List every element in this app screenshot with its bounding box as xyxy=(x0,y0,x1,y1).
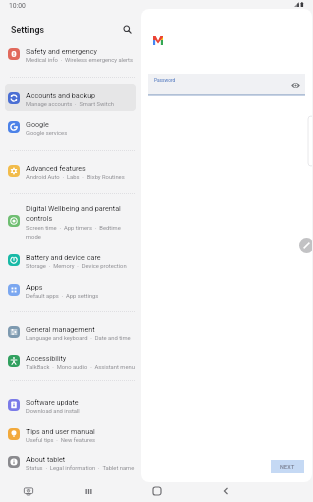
staticText: Download and install xyxy=(26,408,80,415)
button[interactable]: Tips and user manual xyxy=(5,420,136,447)
button[interactable]: Advanced features xyxy=(5,157,136,184)
staticText: About tablet xyxy=(26,455,66,463)
staticText: Password xyxy=(154,78,176,84)
staticText: Apps xyxy=(26,283,43,291)
staticText: Medical info · Wireless emergency alerts xyxy=(26,57,134,64)
staticText: Accounts and backup xyxy=(26,91,96,99)
button[interactable]: Accessibility xyxy=(5,347,136,374)
staticText: Language and keyboard · Date and time xyxy=(26,335,131,342)
button[interactable]: Apps xyxy=(5,276,136,303)
staticText: Software update xyxy=(26,398,79,406)
staticText: Advanced features xyxy=(26,164,86,172)
staticText: General management xyxy=(26,325,95,333)
staticText: Android Auto · Labs · Bixby Routines xyxy=(26,174,125,181)
staticText: NEXT xyxy=(280,464,295,470)
staticText: Safety and emergency xyxy=(26,47,97,55)
button[interactable]: Accounts and backup xyxy=(5,84,136,111)
staticText: Google xyxy=(26,120,49,128)
button[interactable]: Google xyxy=(5,113,136,140)
staticText: Google services xyxy=(26,130,68,137)
button[interactable]: General management xyxy=(5,318,136,345)
staticText: TalkBack · Mono audio · Assistant menu xyxy=(26,364,135,371)
staticText: Status · Legal information · Tablet name xyxy=(26,465,135,472)
button[interactable]: Software update xyxy=(5,391,136,418)
staticText: Accessibility xyxy=(26,354,67,362)
button[interactable]: About tablet xyxy=(5,448,136,475)
staticText: Tips and user manual xyxy=(26,427,95,435)
button[interactable]: NEXT xyxy=(271,460,304,473)
staticText: Useful tips · New features xyxy=(26,437,95,444)
button[interactable]: Search xyxy=(118,20,136,38)
button[interactable]: Digital Wellbeing and parental controls xyxy=(5,202,136,239)
button[interactable]: Home xyxy=(148,480,166,502)
staticText: Settings xyxy=(11,25,44,35)
button[interactable]: Battery and device care xyxy=(5,246,136,273)
button[interactable]: Back xyxy=(217,480,235,502)
staticText: Manage accounts · Smart Switch xyxy=(26,101,114,108)
button[interactable]: Password xyxy=(148,74,305,94)
staticText: Storage · Memory · Device protection xyxy=(26,263,127,270)
staticText: Screen time · App timers · Bedtime mode xyxy=(26,225,121,239)
staticText: Battery and device care xyxy=(26,253,101,261)
button[interactable]: Safety and emergency xyxy=(5,40,136,67)
staticText: Digital Wellbeing and parental controls xyxy=(26,204,121,223)
staticText: 10:00 xyxy=(9,2,26,10)
staticText: Default apps · App settings xyxy=(26,293,99,300)
button[interactable]: Quick tools xyxy=(19,480,37,502)
button[interactable]: Recents xyxy=(79,480,97,502)
button[interactable]: Edit xyxy=(299,238,312,253)
button[interactable]: Show password xyxy=(290,80,301,91)
